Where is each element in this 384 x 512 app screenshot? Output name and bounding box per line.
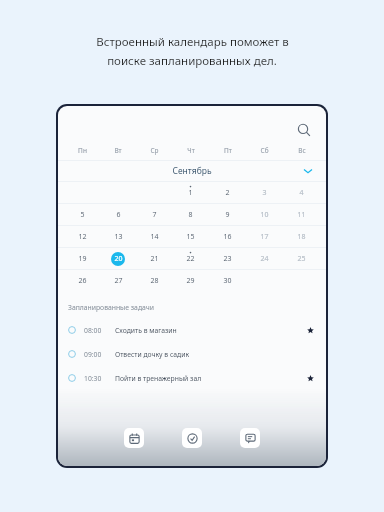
staticText: Запланированные задачи [68, 303, 155, 312]
staticText: 29 [186, 276, 195, 286]
staticText: 17 [260, 232, 269, 242]
button[interactable]: 18 [283, 226, 320, 247]
button[interactable]: 1 [172, 182, 209, 203]
staticText: 10 [260, 210, 269, 220]
button[interactable]: 10 [246, 204, 283, 225]
staticText: Вт [114, 146, 122, 155]
button[interactable]: 10:30 [58, 366, 326, 390]
staticText: 08:00 [84, 326, 102, 335]
other: Развернуть [302, 165, 314, 177]
button[interactable]: 14 [136, 226, 172, 247]
staticText: Пойти в тренажерный зал [115, 374, 202, 383]
staticText: 23 [223, 254, 232, 264]
staticText: 15 [186, 232, 195, 242]
button[interactable]: Задачи [182, 428, 202, 448]
button[interactable]: 20 [100, 248, 136, 269]
staticText: 12 [78, 232, 87, 242]
button[interactable]: 30 [209, 270, 246, 291]
staticText: Пн [78, 146, 87, 155]
button[interactable]: 08:00 [58, 318, 326, 342]
staticText: 3 [262, 188, 267, 198]
staticText: 6 [116, 210, 121, 220]
button[interactable]: 2 [209, 182, 246, 203]
button[interactable]: 21 [136, 248, 172, 269]
staticText: 30 [223, 276, 232, 286]
button[interactable]: 15 [172, 226, 209, 247]
staticText: 14 [150, 232, 159, 242]
staticText: 25 [297, 254, 306, 264]
staticText: Отвести дочку в садик [115, 350, 190, 359]
button[interactable]: 9 [209, 204, 246, 225]
staticText: Сб [260, 146, 269, 155]
button[interactable]: Поиск [294, 120, 314, 140]
button[interactable]: 27 [100, 270, 136, 291]
staticText: 4 [299, 188, 304, 198]
staticText: 22 [186, 254, 195, 264]
staticText: 9 [225, 210, 230, 220]
staticText: 26 [78, 276, 87, 286]
button[interactable]: 7 [136, 204, 172, 225]
button[interactable]: 8 [172, 204, 209, 225]
button[interactable]: 24 [246, 248, 283, 269]
staticText: Вс [298, 146, 306, 155]
staticText: Ср [150, 146, 159, 155]
button[interactable]: 5 [64, 204, 100, 225]
staticText: 19 [78, 254, 87, 264]
button[interactable]: Избранное [304, 372, 316, 384]
staticText: 13 [114, 232, 123, 242]
button[interactable]: 16 [209, 226, 246, 247]
staticText: 10:30 [84, 374, 102, 383]
staticText: 20 [114, 254, 123, 264]
button[interactable]: 4 [283, 182, 320, 203]
staticText: 24 [260, 254, 269, 264]
staticText: Встроенный календарь поможет в [96, 34, 289, 50]
button[interactable]: 29 [172, 270, 209, 291]
staticText: 7 [152, 210, 157, 220]
staticText: 8 [188, 210, 193, 220]
staticText: 5 [80, 210, 85, 220]
staticText: Сходить в магазин [115, 326, 177, 335]
staticText: 1 [188, 188, 193, 198]
button[interactable]: Сентябрь [58, 161, 326, 181]
button[interactable]: 17 [246, 226, 283, 247]
staticText: 28 [150, 276, 159, 286]
staticText: 11 [297, 210, 306, 220]
staticText: Пт [224, 146, 232, 155]
button[interactable]: 11 [283, 204, 320, 225]
button[interactable]: 13 [100, 226, 136, 247]
button[interactable]: 12 [64, 226, 100, 247]
staticText: Чт [187, 146, 195, 155]
button[interactable]: Календарь [124, 428, 144, 448]
button[interactable]: 22 [172, 248, 209, 269]
button[interactable]: 19 [64, 248, 100, 269]
button[interactable]: 28 [136, 270, 172, 291]
button[interactable]: 25 [283, 248, 320, 269]
button[interactable]: 26 [64, 270, 100, 291]
staticText: 16 [223, 232, 232, 242]
button[interactable]: Избранное [304, 324, 316, 336]
staticText: 21 [150, 254, 159, 264]
button[interactable]: 23 [209, 248, 246, 269]
button[interactable]: 3 [246, 182, 283, 203]
staticText: 27 [114, 276, 123, 286]
staticText: 09:00 [84, 350, 102, 359]
staticText: 18 [297, 232, 306, 242]
button[interactable]: 09:00 [58, 342, 326, 366]
staticText: 2 [225, 188, 230, 198]
staticText: Сентябрь [172, 165, 212, 177]
staticText: поиске запланированных дел. [107, 53, 277, 69]
button[interactable]: 6 [100, 204, 136, 225]
button[interactable]: Сообщения [240, 428, 260, 448]
